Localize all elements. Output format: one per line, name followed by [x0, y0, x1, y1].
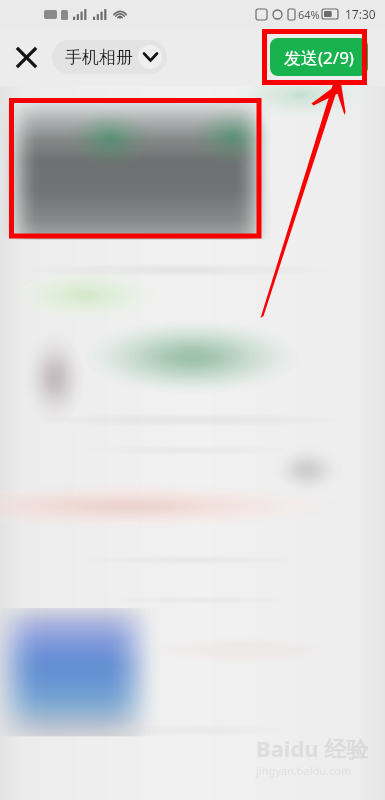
- button[interactable]: 手机相册: [52, 40, 167, 74]
- button[interactable]: Close: [8, 39, 44, 75]
- staticText: 发送(2/9): [284, 46, 354, 69]
- staticText: Baidu 经验: [256, 733, 369, 763]
- button[interactable]: 发送(2/9): [270, 38, 368, 76]
- staticText: jingyan.baidu.com: [256, 763, 352, 778]
- staticText: 64%: [298, 7, 320, 22]
- staticText: 手机相册: [65, 47, 133, 68]
- staticText: 17:30: [345, 6, 376, 22]
